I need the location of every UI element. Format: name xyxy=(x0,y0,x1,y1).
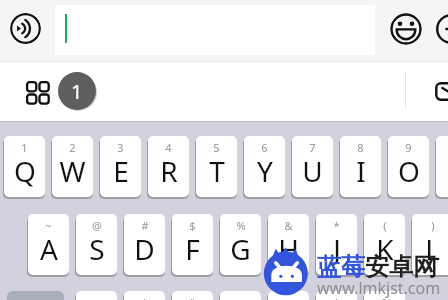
staticText: & xyxy=(284,218,293,233)
button[interactable]: ! xyxy=(316,291,357,300)
staticText: " xyxy=(190,295,195,300)
button[interactable]: * xyxy=(316,214,357,275)
staticText: ( xyxy=(383,218,387,233)
staticText: K xyxy=(376,230,394,268)
staticText: 7 xyxy=(309,140,316,155)
staticText: D xyxy=(134,230,155,268)
button[interactable]: ( xyxy=(364,214,405,275)
button[interactable]: ' xyxy=(124,291,165,300)
staticText: 3 xyxy=(117,140,124,155)
button[interactable]: ) xyxy=(412,214,448,275)
button[interactable]: ~ xyxy=(28,214,69,275)
staticText: G xyxy=(230,230,251,268)
button[interactable]: : xyxy=(220,291,261,300)
staticText: 9 xyxy=(405,140,412,155)
staticText: 1 xyxy=(21,140,28,155)
staticText: W xyxy=(59,152,86,190)
button[interactable]: 9 xyxy=(388,136,429,197)
staticText: 安卓网 xyxy=(365,252,437,282)
staticText: S xyxy=(89,230,105,268)
button[interactable]: % xyxy=(220,214,261,275)
button[interactable]: 6 xyxy=(244,136,285,197)
button[interactable]: " xyxy=(172,291,213,300)
staticText: H xyxy=(278,230,299,268)
button[interactable]: 5 xyxy=(196,136,237,197)
staticText: 8 xyxy=(357,140,364,155)
button[interactable]: - xyxy=(76,291,117,300)
button[interactable]: 0 xyxy=(436,136,448,197)
staticText: % xyxy=(236,218,246,233)
staticText: 1 xyxy=(71,78,83,105)
staticText: ! xyxy=(335,295,338,300)
button[interactable]: # xyxy=(124,214,165,275)
staticText: ~ xyxy=(45,218,52,233)
staticText: 蓝莓 xyxy=(317,252,365,282)
staticText: L xyxy=(425,230,440,268)
staticText: 6 xyxy=(261,140,268,155)
button[interactable]: Keyboard layouts xyxy=(26,81,49,104)
staticText: R xyxy=(160,152,178,190)
staticText: T xyxy=(209,152,225,190)
staticText: ' xyxy=(143,295,146,300)
button[interactable]: 8 xyxy=(340,136,381,197)
button[interactable]: 4 xyxy=(148,136,189,197)
button[interactable]: 7 xyxy=(292,136,333,197)
staticText: * xyxy=(333,218,340,233)
button[interactable]: ; xyxy=(268,291,309,300)
button[interactable]: 1 xyxy=(58,72,96,110)
staticText: 2 xyxy=(69,140,76,155)
staticText: 5 xyxy=(213,140,220,155)
button[interactable]: 2 xyxy=(52,136,93,197)
staticText: F xyxy=(185,230,200,268)
button[interactable]: More options xyxy=(436,14,448,44)
staticText: # xyxy=(141,218,149,233)
staticText: 4 xyxy=(165,140,172,155)
staticText: E xyxy=(113,152,129,190)
staticText: O xyxy=(398,152,420,190)
staticText: ) xyxy=(431,218,435,233)
button[interactable]: @ xyxy=(76,214,117,275)
staticText: J xyxy=(333,230,341,268)
button[interactable]: Shift xyxy=(7,291,64,300)
staticText: I xyxy=(356,152,366,190)
staticText: ; xyxy=(287,295,290,300)
button[interactable]: Emoji xyxy=(390,13,422,45)
staticText: www.lmkjst.com xyxy=(317,277,441,299)
button[interactable]: 3 xyxy=(100,136,141,197)
button[interactable]: 1 xyxy=(4,136,45,197)
staticText: U xyxy=(302,152,323,190)
button[interactable]: Backspace xyxy=(435,82,448,101)
button[interactable] xyxy=(55,5,375,55)
button[interactable]: & xyxy=(268,214,309,275)
staticText: $ xyxy=(189,218,196,233)
button[interactable]: $ xyxy=(172,214,213,275)
button[interactable]: ? xyxy=(364,291,405,300)
staticText: ? xyxy=(382,295,387,300)
staticText: Q xyxy=(14,152,36,190)
button[interactable]: Voice input xyxy=(10,13,41,44)
staticText: Y xyxy=(257,152,273,190)
staticText: A xyxy=(40,230,58,268)
staticText: @ xyxy=(92,218,102,233)
